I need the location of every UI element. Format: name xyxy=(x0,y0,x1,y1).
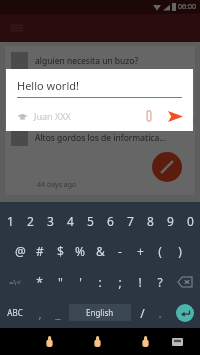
button[interactable]: Home xyxy=(89,334,105,350)
staticText: @ xyxy=(15,243,26,259)
button[interactable]: Altos gordos los de informatica... xyxy=(5,123,195,195)
staticText: . xyxy=(158,305,162,321)
button[interactable]: - xyxy=(110,236,130,266)
staticText: ) xyxy=(178,243,182,259)
staticText: ( xyxy=(158,243,162,259)
staticText: + xyxy=(137,243,144,259)
staticText: 0 xyxy=(187,213,194,229)
button[interactable]: / xyxy=(133,297,151,328)
staticText: ! xyxy=(138,274,142,290)
button[interactable]: Open navigation menu xyxy=(9,20,25,36)
staticText: 1 xyxy=(7,213,14,229)
staticText: 2 xyxy=(27,213,34,229)
button[interactable]: 3 xyxy=(40,206,60,236)
button[interactable]: Recent apps xyxy=(137,334,153,350)
staticText: English xyxy=(86,307,114,318)
button[interactable]: " xyxy=(50,266,70,297)
button[interactable]: ) xyxy=(170,236,190,266)
button[interactable]: ( xyxy=(150,236,170,266)
button[interactable]: English xyxy=(69,304,131,321)
button[interactable]: ? xyxy=(150,266,170,297)
button[interactable]: ABC xyxy=(0,297,30,328)
button[interactable]: $ xyxy=(50,236,70,266)
staticText: 06:00 xyxy=(178,2,196,12)
button[interactable]: 2 xyxy=(20,206,40,236)
button[interactable]: Send xyxy=(166,107,184,125)
button[interactable]: % xyxy=(70,236,90,266)
staticText: ? xyxy=(157,274,163,290)
button[interactable]: * xyxy=(29,266,50,297)
staticText: ' xyxy=(79,274,82,290)
button[interactable]: Backspace xyxy=(170,266,200,297)
staticText: , xyxy=(38,305,42,321)
button[interactable]: 8 xyxy=(140,206,160,236)
button[interactable]: # xyxy=(30,236,50,266)
staticText: _ xyxy=(55,305,61,321)
staticText: Altos gordos los de informatica... xyxy=(35,132,167,144)
staticText: # xyxy=(36,243,44,259)
button[interactable]: ' xyxy=(70,266,90,297)
staticText: Juan XXX xyxy=(34,110,71,122)
staticText: 44 days ago xyxy=(37,180,77,190)
staticText: Hello world! xyxy=(17,78,79,93)
button[interactable]: _ xyxy=(49,297,67,328)
button[interactable]: Enter xyxy=(176,304,194,322)
button[interactable]: ! xyxy=(130,266,150,297)
staticText: 8 xyxy=(147,213,154,229)
staticText: " xyxy=(58,274,63,290)
button[interactable]: : xyxy=(90,266,110,297)
staticText: 5 xyxy=(87,213,94,229)
button[interactable]: 5 xyxy=(80,206,100,236)
button[interactable]: 6 xyxy=(100,206,120,236)
button[interactable]: + xyxy=(130,236,150,266)
staticText: $ xyxy=(57,243,64,259)
staticText: * xyxy=(36,274,43,290)
button[interactable]: Hide keyboard xyxy=(171,335,184,348)
staticText: =\< xyxy=(9,277,21,287)
button[interactable]: ; xyxy=(110,266,130,297)
staticText: 7 xyxy=(127,213,134,229)
staticText: ; xyxy=(118,274,122,290)
staticText: 6 xyxy=(107,213,114,229)
button[interactable]: Attach file xyxy=(142,109,156,123)
staticText: 3 xyxy=(47,213,54,229)
staticText: 4 xyxy=(67,213,74,229)
staticText: - xyxy=(118,243,122,259)
button[interactable]: @ xyxy=(10,236,30,266)
staticText: : xyxy=(98,274,102,290)
button[interactable]: 0 xyxy=(180,206,200,236)
button[interactable]: Compose new post xyxy=(152,152,182,182)
staticText: / xyxy=(140,305,145,321)
button[interactable]: alguien necesita un buzo? xyxy=(5,46,195,118)
button[interactable]: =\< xyxy=(0,266,29,297)
button[interactable]: . xyxy=(151,297,169,328)
staticText: & xyxy=(96,243,105,259)
button[interactable]: Back xyxy=(41,334,57,350)
staticText: 9 xyxy=(167,213,174,229)
button[interactable]: & xyxy=(90,236,110,266)
button[interactable]: 1 xyxy=(0,206,20,236)
staticText: ABC xyxy=(7,307,23,318)
button[interactable]: 9 xyxy=(160,206,180,236)
button[interactable]: , xyxy=(30,297,49,328)
button[interactable]: 4 xyxy=(60,206,80,236)
button[interactable]: 7 xyxy=(120,206,140,236)
staticText: alguien necesita un buzo? xyxy=(35,55,139,67)
staticText: % xyxy=(75,243,85,259)
